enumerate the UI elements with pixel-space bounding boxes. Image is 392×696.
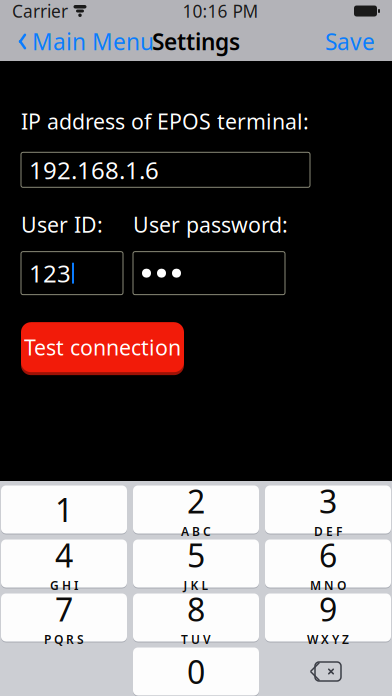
staticText: 6 (319, 534, 337, 576)
staticText: P Q R S (44, 631, 84, 647)
staticText: Main Menu (32, 26, 154, 56)
staticText: 2 (187, 480, 205, 522)
staticText: Settings (152, 26, 240, 56)
button[interactable]: 7 (1, 593, 127, 642)
staticText: Test connection (24, 333, 181, 361)
button[interactable]: 9 (265, 593, 391, 642)
staticText: T U V (181, 631, 211, 647)
staticText: 4 (55, 534, 73, 576)
staticText: 0 (187, 650, 205, 693)
staticText: 1 (55, 488, 73, 531)
staticText: 5 (187, 534, 205, 576)
staticText: 3 (319, 480, 337, 522)
button[interactable]: 2 (133, 485, 259, 534)
button[interactable]: 1 (1, 485, 127, 534)
staticText: J K L (183, 577, 208, 593)
button[interactable]: 8 (133, 593, 259, 642)
staticText: 10:16 PM (182, 0, 258, 22)
button[interactable]: Main Menu (9, 20, 162, 62)
button[interactable]: 5 (133, 539, 259, 588)
staticText: 7 (55, 588, 73, 630)
staticText: W X Y Z (307, 631, 349, 647)
button[interactable]: 3 (265, 485, 391, 534)
staticText: 192.168.1.6 (29, 154, 159, 186)
staticText: 8 (187, 588, 205, 630)
staticText: 9 (319, 588, 337, 630)
staticText: User ID: (21, 210, 103, 239)
staticText: 123 (29, 257, 71, 289)
staticText: G H I (50, 577, 78, 593)
staticText: D E F (314, 523, 342, 539)
button[interactable]: 0 (133, 647, 259, 696)
staticText: A B C (181, 523, 211, 539)
staticText: M N O (310, 577, 346, 593)
button[interactable]: 6 (265, 539, 391, 588)
button[interactable]: Save (317, 20, 383, 62)
staticText: Carrier (12, 0, 68, 22)
button[interactable]: Test connection (21, 321, 184, 374)
staticText: Save (325, 26, 375, 56)
staticText: IP address of EPOS terminal: (21, 107, 309, 135)
staticText: User password: (133, 210, 288, 239)
button[interactable]: Delete (265, 647, 391, 695)
button[interactable]: 4 (1, 539, 127, 588)
